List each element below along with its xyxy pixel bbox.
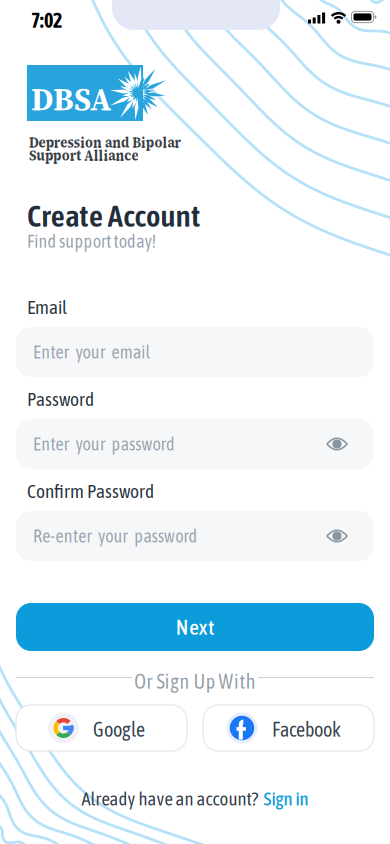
button[interactable]: Show password: [319, 419, 355, 469]
staticText: Enter your email: [33, 342, 150, 362]
staticText: Google: [93, 718, 145, 741]
staticText: 7:02: [31, 9, 62, 32]
button[interactable]: Sign in: [263, 788, 308, 809]
button[interactable]: Enter your password: [16, 419, 374, 469]
staticText: Next: [176, 615, 214, 639]
staticText: Depression and Bipolar: [29, 131, 219, 153]
staticText: Create Account: [27, 198, 200, 233]
staticText: Re-enter your password: [33, 526, 198, 546]
staticText: Find support today!: [27, 231, 157, 252]
button[interactable]: Facebook: [203, 705, 374, 751]
button[interactable]: Re-enter your password: [16, 511, 374, 561]
staticText: Support Alliance: [29, 144, 166, 166]
staticText: DBSA: [31, 77, 111, 121]
staticText: Enter your password: [33, 434, 175, 454]
staticText: Email: [27, 296, 67, 318]
staticText: Sign in: [263, 788, 308, 809]
button[interactable]: Show password: [319, 511, 355, 561]
staticText: Or Sign Up With: [134, 670, 256, 693]
staticText: Facebook: [272, 718, 341, 741]
staticText: Already have an account?: [81, 788, 258, 809]
staticText: Confirm Password: [27, 480, 154, 502]
button[interactable]: Next: [16, 603, 374, 651]
staticText: Password: [27, 388, 94, 410]
button[interactable]: Enter your email: [16, 327, 374, 377]
button[interactable]: Google: [16, 705, 187, 751]
